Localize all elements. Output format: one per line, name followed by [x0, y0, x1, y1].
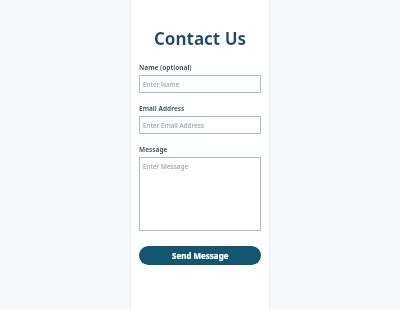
button[interactable]: Enter Name — [139, 75, 261, 93]
button[interactable]: Send Message — [139, 246, 261, 265]
staticText: Contact Us — [131, 27, 269, 50]
button[interactable]: Enter Email Address — [139, 116, 261, 134]
staticText: Email Address — [139, 104, 185, 113]
staticText: Send Message — [172, 250, 229, 261]
staticText: Message — [139, 145, 168, 154]
button[interactable]: Enter Message — [139, 157, 261, 231]
staticText: Enter Name — [143, 80, 180, 89]
staticText: Name (optional) — [139, 63, 192, 72]
staticText: Enter Message — [143, 162, 189, 171]
staticText: Enter Email Address — [143, 121, 204, 130]
